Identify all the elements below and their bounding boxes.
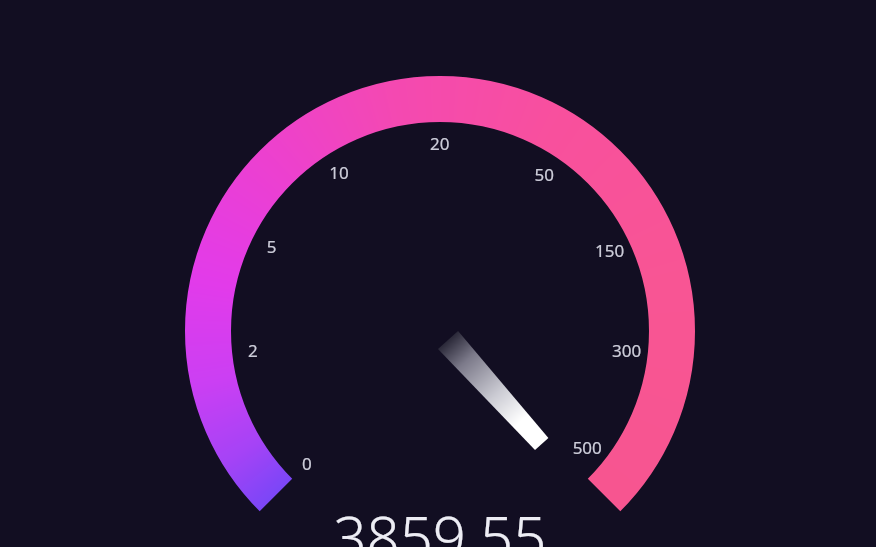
button[interactable]: Speed gauge [0, 0, 876, 547]
